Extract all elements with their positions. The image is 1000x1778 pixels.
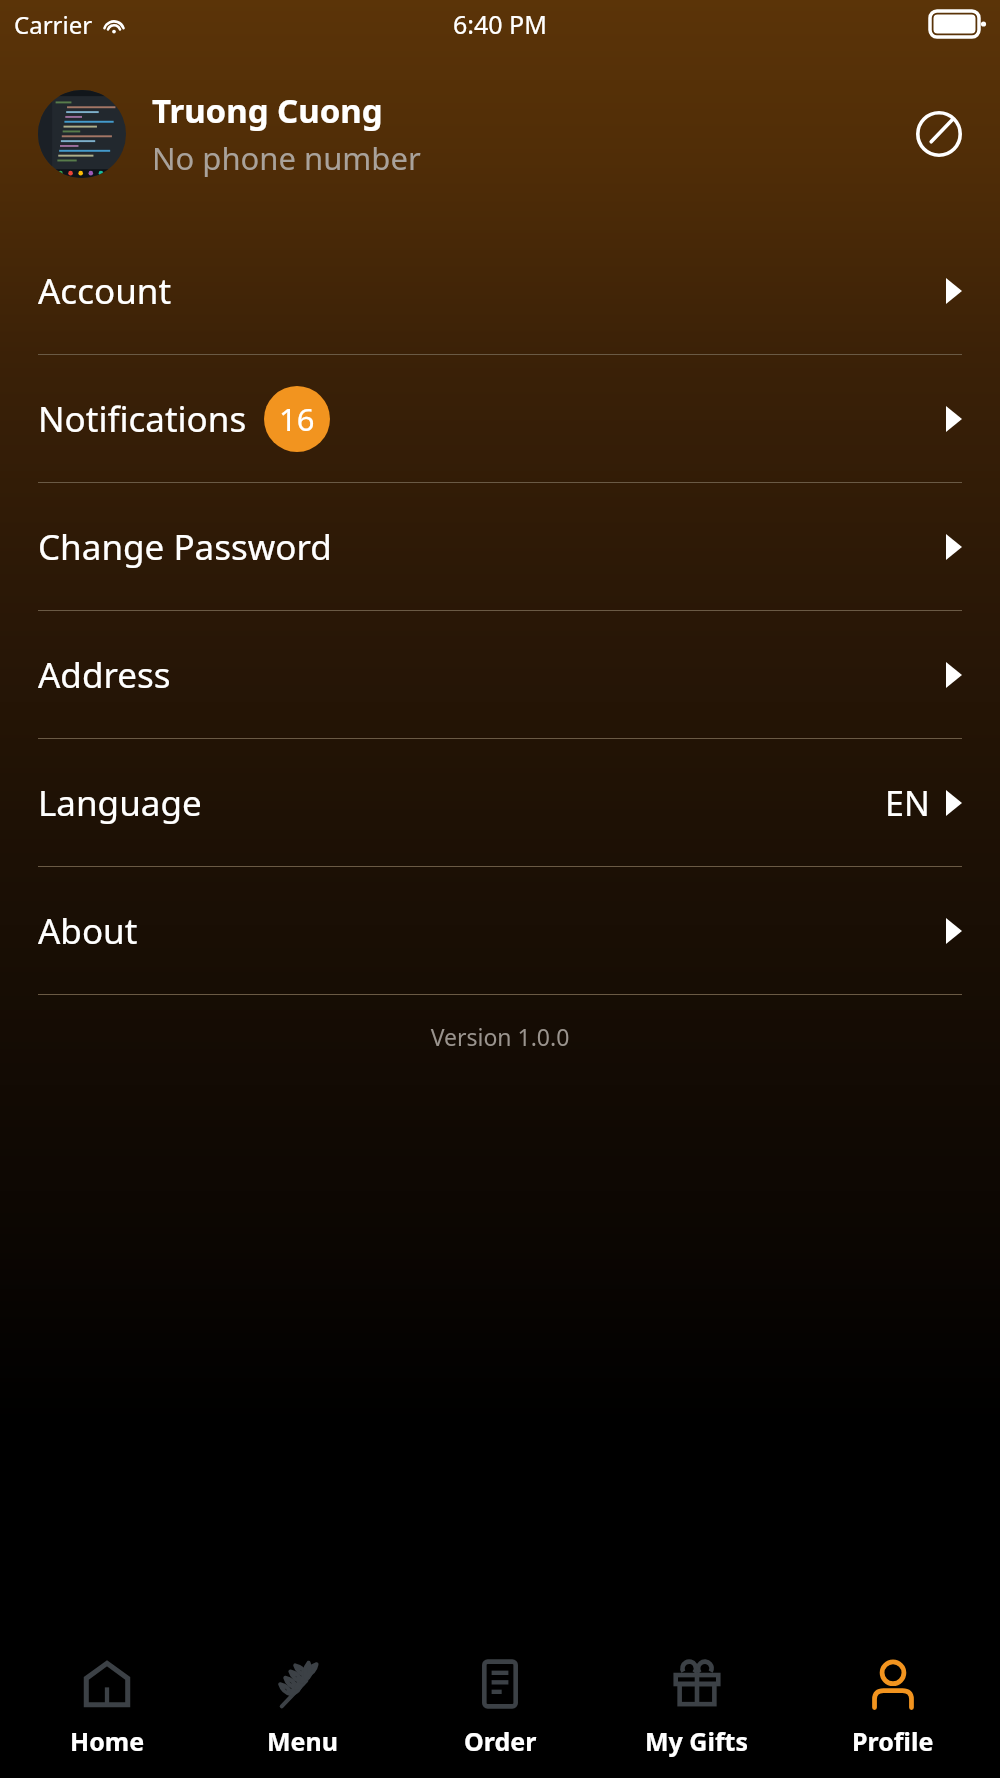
button[interactable]: Change Password bbox=[0, 483, 1000, 610]
button[interactable]: About bbox=[0, 867, 1000, 994]
button[interactable]: Menu bbox=[213, 1630, 393, 1758]
staticText: Version 1.0.0 bbox=[0, 1021, 1000, 1052]
staticText: Profile bbox=[852, 1724, 934, 1758]
button[interactable]: Notifications bbox=[0, 355, 1000, 482]
staticText: Account bbox=[38, 267, 172, 315]
button[interactable]: Language bbox=[0, 739, 1000, 866]
button[interactable]: Order bbox=[410, 1630, 590, 1758]
staticText: Carrier bbox=[14, 8, 93, 41]
staticText: Change Password bbox=[38, 523, 332, 571]
button[interactable]: Address bbox=[0, 611, 1000, 738]
button[interactable]: Account bbox=[0, 227, 1000, 354]
staticText: About bbox=[38, 907, 138, 955]
staticText: Menu bbox=[267, 1724, 339, 1758]
staticText: 16 bbox=[279, 398, 315, 440]
button[interactable]: Home bbox=[17, 1630, 197, 1758]
button[interactable]: My Gifts bbox=[607, 1630, 787, 1758]
staticText: Home bbox=[70, 1724, 145, 1758]
button[interactable]: Edit profile bbox=[908, 103, 970, 165]
staticText: Truong Cuong bbox=[152, 88, 383, 133]
staticText: Address bbox=[38, 651, 171, 699]
staticText: No phone number bbox=[152, 137, 421, 179]
button[interactable]: Profile bbox=[803, 1630, 983, 1758]
staticText: Order bbox=[464, 1724, 537, 1758]
staticText: My Gifts bbox=[645, 1724, 749, 1758]
staticText: Language bbox=[38, 779, 202, 827]
button[interactable]: Truong Cuong bbox=[38, 88, 970, 179]
staticText: EN bbox=[885, 780, 930, 826]
staticText: 6:40 PM bbox=[453, 7, 547, 41]
staticText: Notifications bbox=[38, 395, 247, 443]
